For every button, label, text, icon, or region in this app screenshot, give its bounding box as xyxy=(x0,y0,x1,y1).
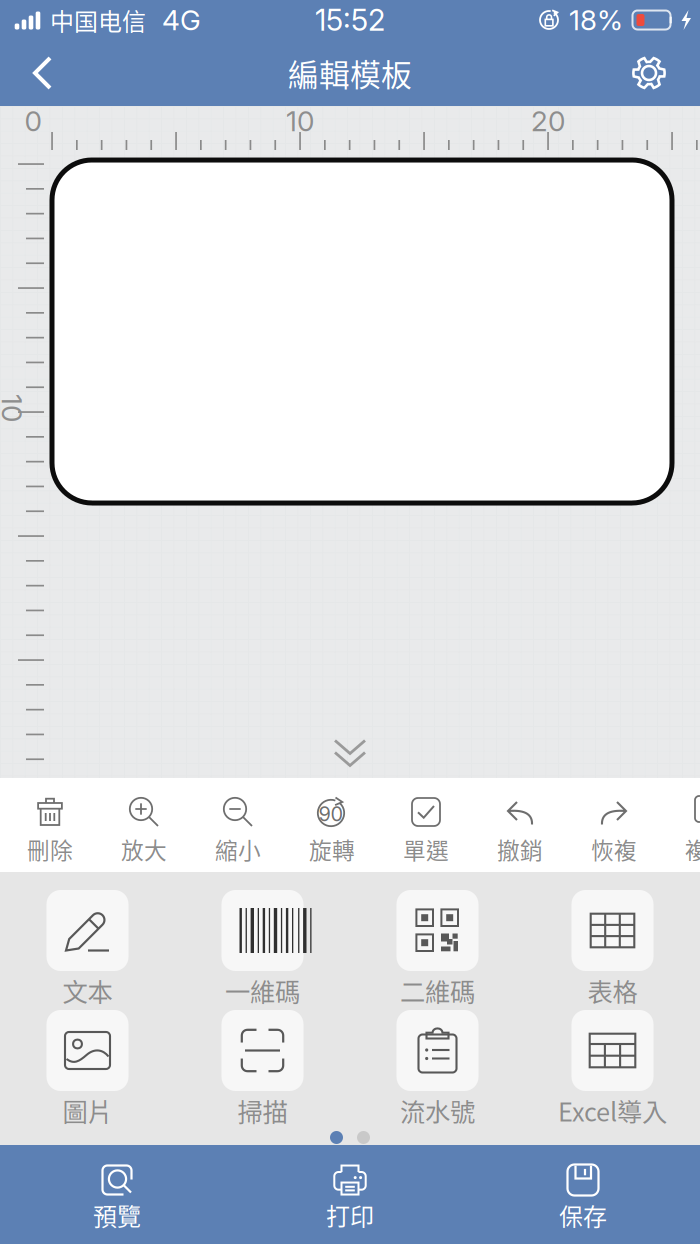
staticText: 10 xyxy=(286,104,314,138)
staticText: 15:52 xyxy=(315,2,385,38)
staticText: 文本 xyxy=(62,972,112,1009)
staticText: 撤銷 xyxy=(497,833,543,865)
button[interactable]: 放大 xyxy=(97,792,191,886)
staticText: 表格 xyxy=(587,972,637,1009)
staticText: 恢複 xyxy=(591,833,637,865)
button[interactable]: 掃描 xyxy=(175,1010,350,1130)
button[interactable]: 預覽 xyxy=(0,1145,233,1244)
staticText: 放大 xyxy=(121,833,167,865)
staticText: 刪除 xyxy=(27,833,73,865)
button[interactable]: 流水號 xyxy=(350,1010,525,1130)
staticText: 90 xyxy=(318,802,343,826)
button[interactable]: 表格 xyxy=(525,890,700,1010)
staticText: 4G xyxy=(162,3,201,37)
button[interactable]: Settings xyxy=(614,42,684,104)
staticText: 圖片 xyxy=(62,1092,112,1129)
staticText: 打印 xyxy=(326,1198,374,1232)
button[interactable]: 保存 xyxy=(466,1145,699,1244)
button[interactable]: 恢複 xyxy=(567,792,661,886)
staticText: 複製 xyxy=(685,833,700,865)
button[interactable]: 單選 xyxy=(379,792,473,886)
staticText: Excel導入 xyxy=(558,1092,667,1129)
staticText: 中国电信 xyxy=(50,3,146,37)
button[interactable]: 複製 xyxy=(661,792,700,886)
button[interactable]: Excel導入 xyxy=(525,1010,700,1130)
button[interactable]: 縮小 xyxy=(191,792,285,886)
staticText: 10 xyxy=(0,391,26,425)
staticText: 保存 xyxy=(559,1198,607,1232)
staticText: 編輯模板 xyxy=(288,51,412,95)
staticText: 二維碼 xyxy=(400,972,475,1009)
button[interactable]: 文本 xyxy=(0,890,175,1010)
staticText: 預覽 xyxy=(93,1198,141,1232)
staticText: 掃描 xyxy=(237,1092,287,1129)
button[interactable]: 刪除 xyxy=(3,792,97,886)
button[interactable]: 撤銷 xyxy=(473,792,567,886)
button[interactable]: Back xyxy=(8,42,78,104)
staticText: 旋轉 xyxy=(309,833,355,865)
button[interactable]: 圖片 xyxy=(0,1010,175,1130)
staticText: 18% xyxy=(569,3,623,37)
staticText: 一維碼 xyxy=(225,972,300,1009)
staticText: 單選 xyxy=(403,833,449,865)
staticText: 流水號 xyxy=(400,1092,475,1129)
button[interactable]: Collapse panel xyxy=(280,725,420,781)
button[interactable]: 二維碼 xyxy=(350,890,525,1010)
staticText: 20 xyxy=(531,104,565,138)
button[interactable]: 一維碼 xyxy=(175,890,350,1010)
button[interactable]: 90 xyxy=(285,792,379,886)
staticText: 縮小 xyxy=(215,833,261,865)
button[interactable]: 打印 xyxy=(233,1145,466,1244)
staticText: 0 xyxy=(24,104,41,138)
